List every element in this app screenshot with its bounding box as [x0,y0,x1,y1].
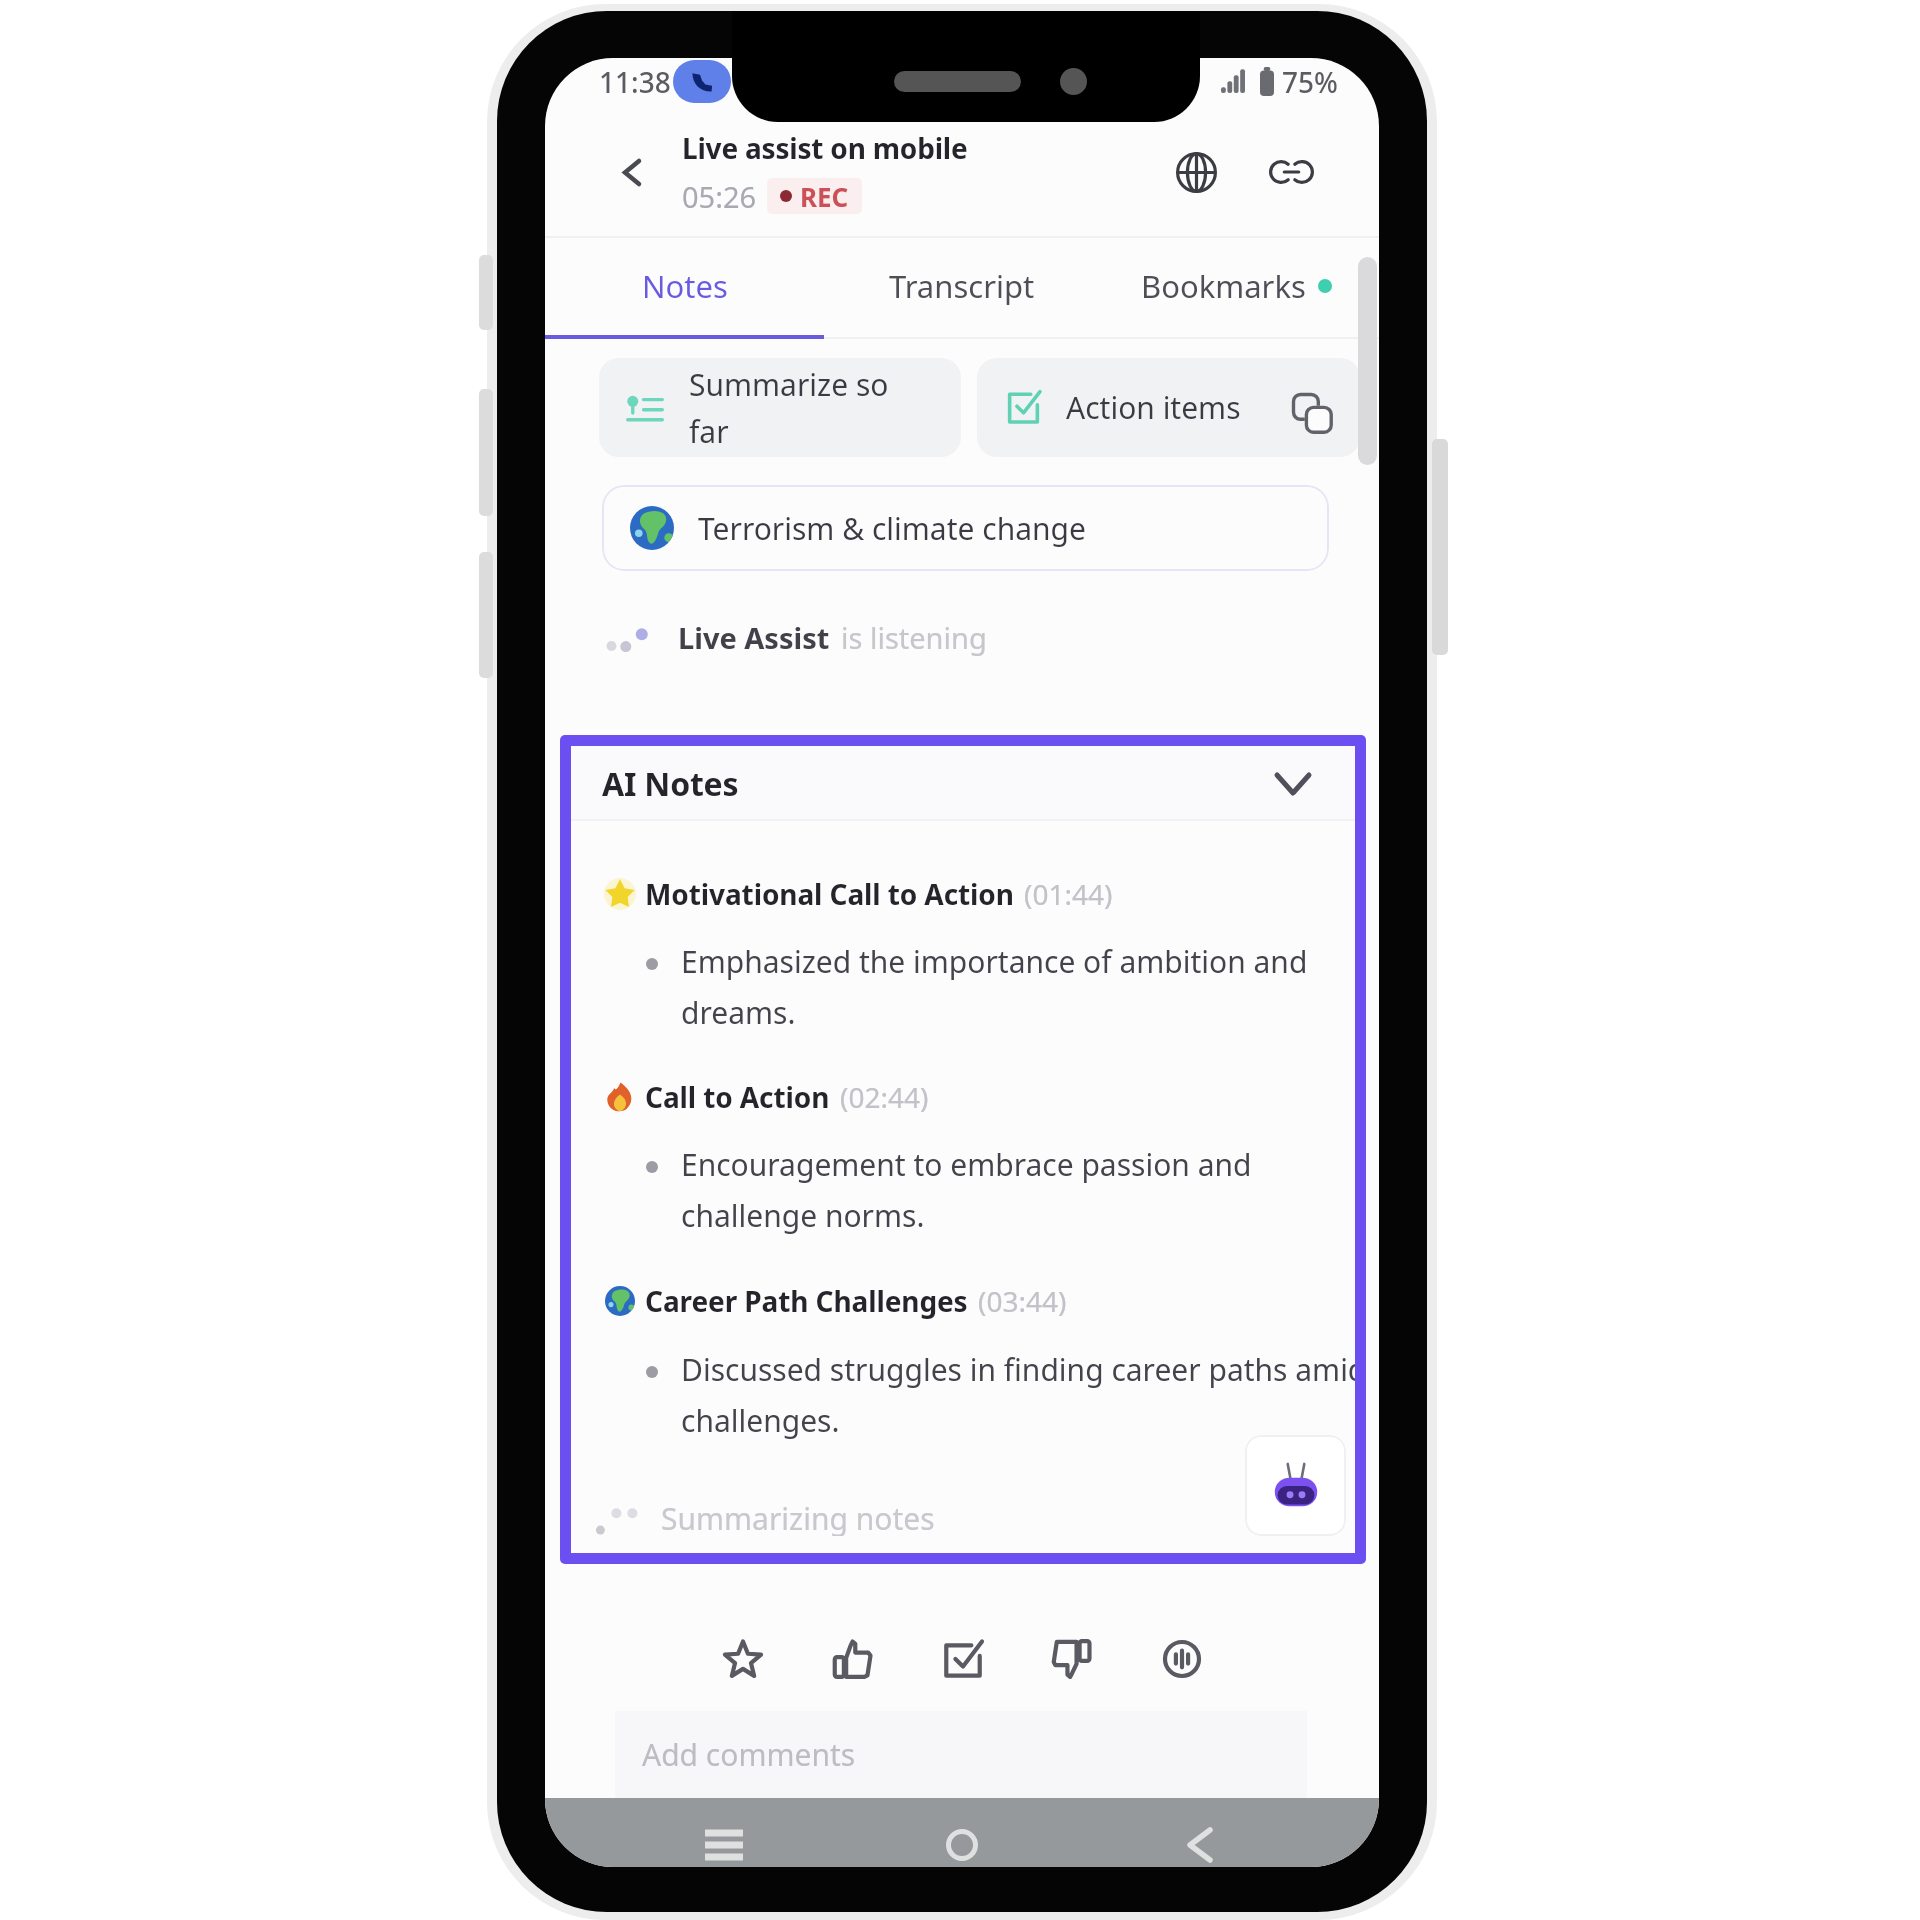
staticText: Motivational Call to Action [645,875,1014,913]
staticText: (03:44) [978,1282,1067,1320]
staticText: 75% [1282,63,1338,97]
button[interactable]: Back [597,137,667,207]
staticText: Live Assist [678,618,830,657]
button[interactable]: Copy link [1256,137,1326,207]
staticText: 11:38 [599,63,671,97]
staticText: Emphasized the importance of ambition an… [681,941,1308,982]
button[interactable]: Copy [1282,383,1342,443]
staticText: Add comments [642,1734,856,1775]
button[interactable]: Translate [1161,137,1231,207]
staticText: Notes [642,265,728,307]
button[interactable]: Favorite [706,1622,780,1696]
button[interactable]: Add comments [615,1711,1307,1798]
staticText: Summarize so [689,364,889,405]
staticText: REC [800,179,849,214]
staticText: challenges. [681,1400,840,1441]
button[interactable]: Terrorism & climate change [602,485,1329,571]
button[interactable]: Home [843,1798,1081,1867]
button[interactable]: Add to action items [926,1622,1000,1696]
button[interactable]: Thumbs up [816,1622,890,1696]
button[interactable]: Bookmarks [1123,254,1323,318]
button[interactable]: Play audio [1145,1622,1219,1696]
button[interactable]: Transcript [862,254,1062,318]
staticText: dreams. [681,992,796,1033]
staticText: Action items [1066,387,1241,428]
staticText: AI Notes [602,762,739,806]
staticText: (02:44) [840,1078,929,1116]
staticText: Bookmarks [1141,265,1306,307]
button[interactable]: Recent apps [605,1798,843,1867]
button[interactable]: Notes [585,254,785,318]
staticText: Terrorism & climate change [698,508,1086,549]
staticText: challenge norms. [681,1195,925,1236]
button[interactable]: Collapse AI Notes [1263,754,1323,814]
staticText: Career Path Challenges [645,1282,968,1320]
button[interactable]: Summarize so [599,358,961,457]
staticText: Summarizing notes [661,1498,935,1536]
staticText: Transcript [889,265,1035,307]
button[interactable]: Back [1081,1798,1319,1867]
staticText: 05:26 [682,177,757,213]
staticText: (01:44) [1024,875,1113,913]
staticText: far [689,411,729,452]
staticText: Call to Action [645,1078,830,1116]
button[interactable]: Thumbs down [1035,1622,1109,1696]
staticText: Discussed struggles in finding career pa… [681,1349,1367,1390]
staticText: Live assist on mobile [682,129,968,167]
button[interactable]: Action items [977,358,1360,457]
staticText: is listening [841,618,987,657]
staticText: Encouragement to embrace passion and [681,1144,1252,1185]
